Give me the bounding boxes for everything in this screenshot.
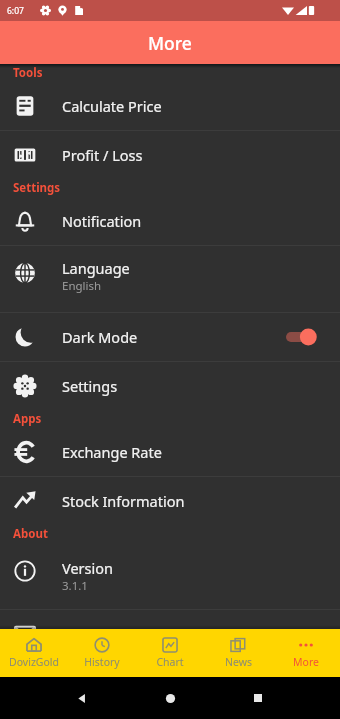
staticText: English [62,278,102,294]
staticText: Dark Mode [62,327,138,347]
staticText: Calculate Price [62,96,162,116]
button[interactable]: Calculate Price [0,82,340,130]
other: Back [77,693,88,704]
staticText: Version [62,558,113,578]
button[interactable]: Dark Mode [0,313,340,361]
staticText: News [225,655,252,669]
staticText: 6:07 [7,5,24,17]
staticText: Stock Information [62,491,185,511]
button[interactable]: DovizGold [0,629,68,677]
staticText: DovizGold [9,655,59,669]
other: Home [165,693,176,704]
staticText: Feedback [62,624,127,629]
button[interactable]: Chart [136,629,204,677]
staticText: Notification [62,211,142,231]
button[interactable]: Feedback [0,610,340,629]
staticText: Chart [156,655,184,669]
staticText: History [84,655,120,669]
button[interactable]: History [68,629,136,677]
button[interactable]: Language [0,246,340,312]
staticText: Settings [13,180,61,196]
staticText: Tools [13,65,43,81]
staticText: More [293,655,319,669]
other: Recents [253,693,263,703]
button[interactable]: News [204,629,272,677]
staticText: Apps [13,411,42,427]
button[interactable]: More [272,629,340,677]
button[interactable]: Profit / Loss [0,131,340,179]
button[interactable]: Exchange Rate [0,428,340,476]
staticText: Language [62,258,130,278]
staticText: Profit / Loss [62,145,143,165]
button[interactable]: Dark mode toggle [286,328,317,346]
staticText: About [13,526,48,542]
button[interactable]: Notification [0,197,340,245]
staticText: Exchange Rate [62,442,162,462]
button[interactable]: Stock Information [0,477,340,525]
button[interactable]: Settings [0,362,340,410]
staticText: 3.1.1 [62,578,88,594]
staticText: Settings [62,376,118,396]
staticText: More [148,31,192,55]
button[interactable]: Version [0,543,340,609]
